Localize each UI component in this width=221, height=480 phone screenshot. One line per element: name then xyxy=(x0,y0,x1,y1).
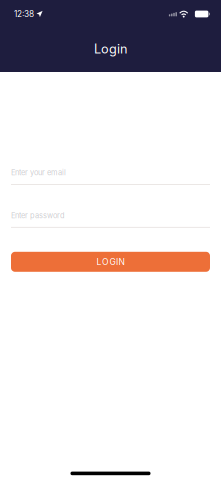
button[interactable]: Enter your email xyxy=(11,168,210,185)
staticText: 12:38 xyxy=(14,9,34,19)
button[interactable]: LOGIN xyxy=(11,252,210,272)
staticText: Enter password xyxy=(11,211,65,220)
staticText: LOGIN xyxy=(96,257,124,267)
staticText: Login xyxy=(94,41,127,57)
button[interactable]: Enter password xyxy=(11,211,210,228)
staticText: Enter your email xyxy=(11,168,66,177)
